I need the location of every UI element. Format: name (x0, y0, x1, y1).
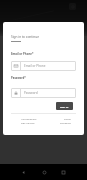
staticText: Sign In (60, 105, 69, 108)
staticText: Email or Phone (24, 64, 46, 68)
button[interactable]: Recent apps (55, 164, 71, 180)
staticText: Password (24, 91, 38, 95)
button[interactable]: Forgot (51, 118, 71, 125)
button[interactable]: Home (36, 164, 52, 180)
button[interactable]: Email or Phone (11, 61, 76, 71)
staticText: Sign Up Here (21, 122, 35, 125)
staticText: Password? (60, 122, 71, 125)
button[interactable]: Not signed up? (21, 118, 41, 125)
button[interactable]: Back (15, 164, 31, 180)
staticText: Password* (11, 76, 26, 80)
button[interactable]: Password (11, 88, 76, 98)
staticText: Not signed up? (21, 118, 37, 121)
staticText: Email or Phone* (11, 52, 34, 56)
staticText: Sign in to continue (11, 35, 39, 39)
staticText: Forgot (64, 118, 71, 121)
button[interactable]: Sign In (56, 102, 73, 110)
